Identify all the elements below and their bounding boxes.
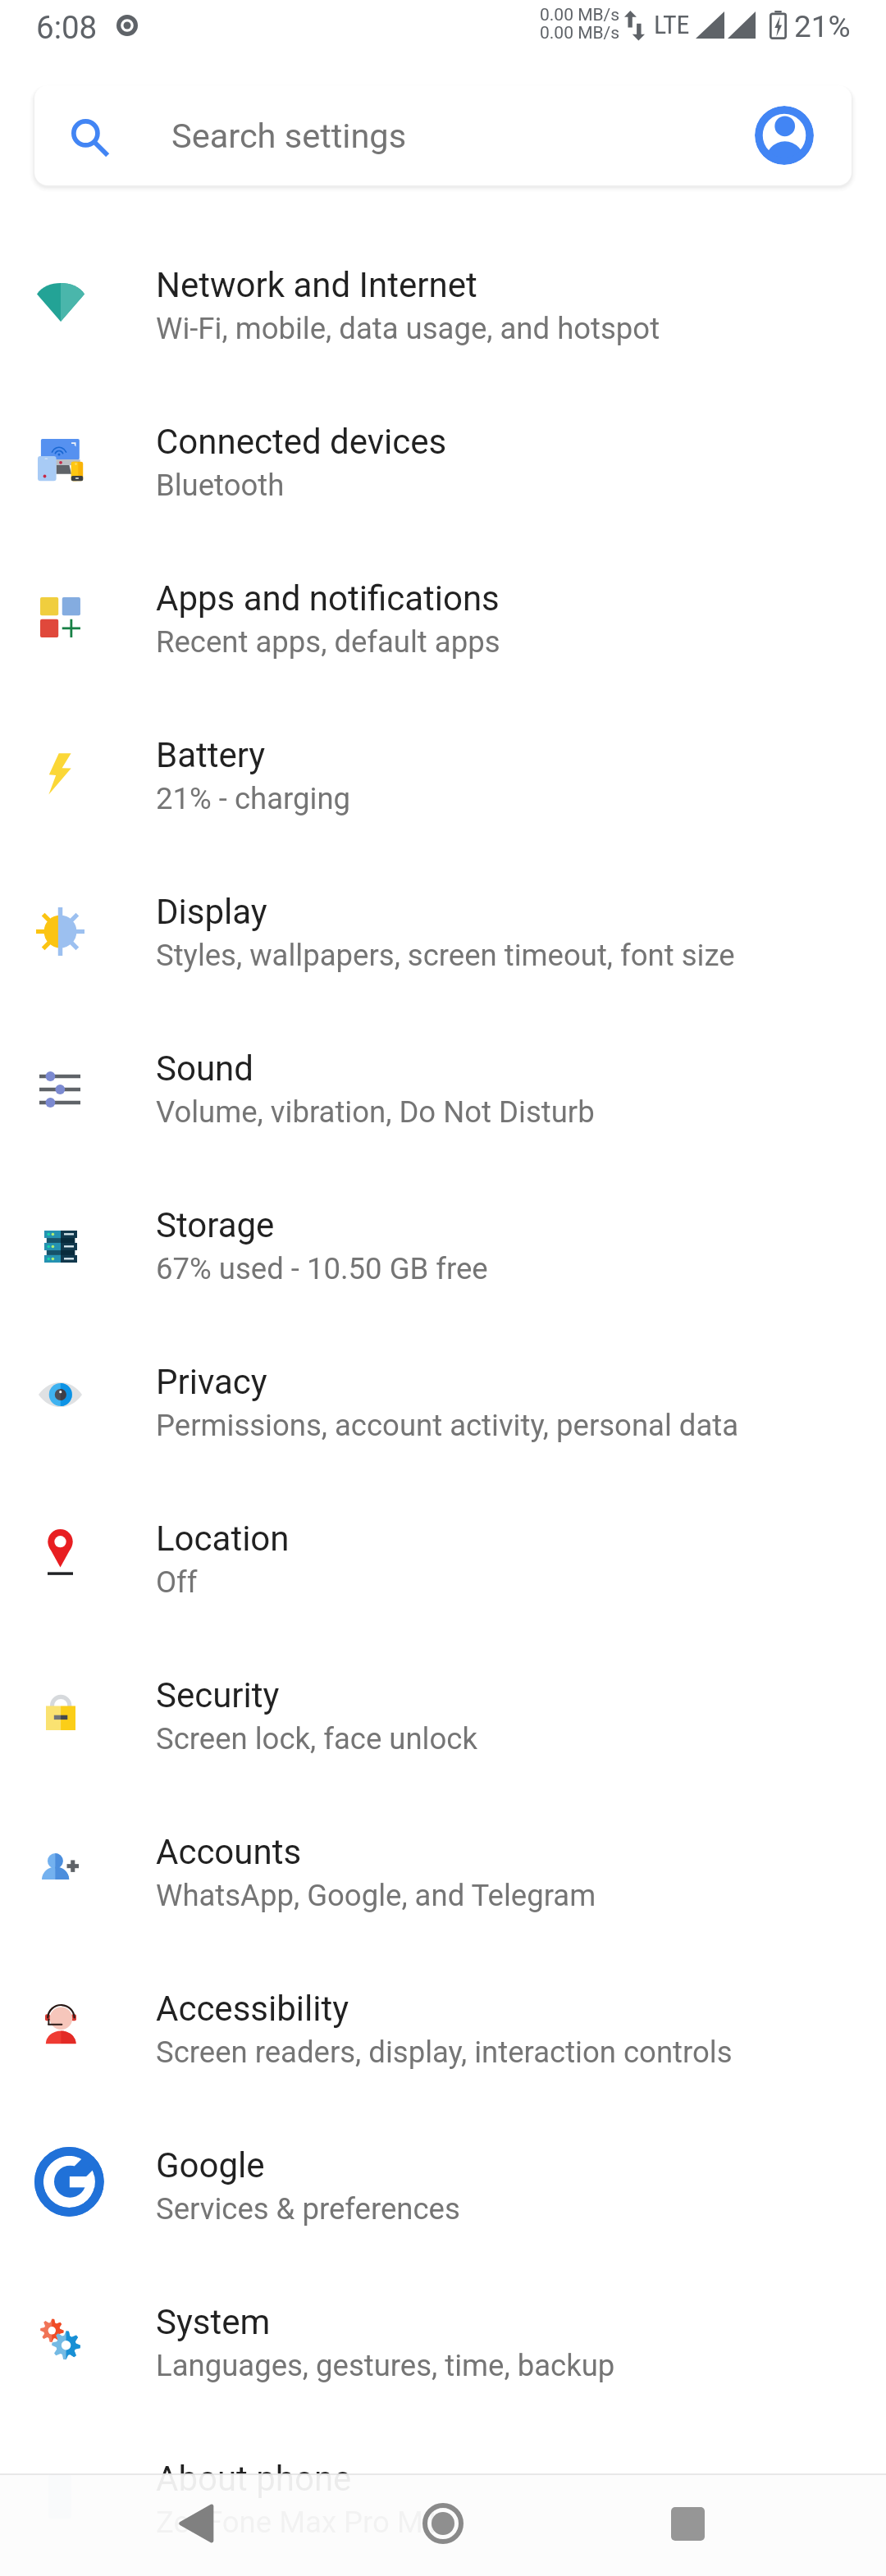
staticText: Recent apps, default apps bbox=[156, 624, 500, 660]
staticText: 0.00 MB/s bbox=[540, 5, 620, 25]
staticText: Accessibility bbox=[156, 1989, 349, 2029]
staticText: LTE bbox=[654, 9, 690, 40]
staticText: Location bbox=[156, 1519, 290, 1559]
button[interactable]: About phone bbox=[0, 2442, 886, 2576]
button[interactable]: Sound bbox=[0, 1032, 886, 1189]
staticText: Privacy bbox=[156, 1362, 267, 1402]
staticText: 6:08 bbox=[36, 9, 98, 46]
staticText: Accounts bbox=[156, 1832, 302, 1872]
staticText: Battery bbox=[156, 735, 266, 775]
button[interactable]: Storage bbox=[0, 1189, 886, 1345]
staticText: Security bbox=[156, 1675, 280, 1715]
staticText: Connected devices bbox=[156, 422, 447, 462]
button[interactable]: Apps and notifications bbox=[0, 562, 886, 719]
staticText: Services & preferences bbox=[156, 2191, 460, 2227]
staticText: 21% - charging bbox=[156, 781, 351, 816]
staticText: Google bbox=[156, 2145, 265, 2185]
staticText: 21% bbox=[794, 9, 851, 44]
staticText: Bluetooth bbox=[156, 468, 285, 503]
staticText: Apps and notifications bbox=[156, 578, 500, 619]
button[interactable]: Recents bbox=[658, 2494, 717, 2553]
staticText: Styles, wallpapers, screen timeout, font… bbox=[156, 938, 735, 973]
staticText: Wi-Fi, mobile, data usage, and hotspot bbox=[156, 311, 660, 346]
button[interactable]: Display bbox=[0, 875, 886, 1032]
button[interactable]: Back bbox=[166, 2494, 225, 2553]
staticText: ZenFone Max Pro M1 bbox=[156, 2505, 441, 2540]
staticText: Sound bbox=[156, 1048, 253, 1089]
staticText: Screen lock, face unlock bbox=[156, 1721, 477, 1756]
staticText: Screen readers, display, interaction con… bbox=[156, 2035, 733, 2070]
button[interactable]: Location bbox=[0, 1502, 886, 1659]
button[interactable]: Google bbox=[0, 2129, 886, 2286]
staticText: Display bbox=[156, 892, 267, 932]
staticText: Search settings bbox=[171, 116, 407, 156]
staticText: Languages, gestures, time, backup bbox=[156, 2348, 615, 2383]
button[interactable]: Security bbox=[0, 1659, 886, 1816]
staticText: Off bbox=[156, 1564, 198, 1600]
staticText: Network and Internet bbox=[156, 265, 477, 305]
button[interactable]: Accounts bbox=[0, 1816, 886, 1972]
button[interactable]: Home bbox=[413, 2494, 473, 2553]
button[interactable]: Connected devices bbox=[0, 405, 886, 562]
staticText: About phone bbox=[156, 2459, 352, 2499]
staticText: Storage bbox=[156, 1205, 275, 1245]
staticText: System bbox=[156, 2302, 271, 2342]
button[interactable]: Account bbox=[755, 106, 814, 165]
button[interactable]: System bbox=[0, 2286, 886, 2442]
staticText: Volume, vibration, Do Not Disturb bbox=[156, 1094, 595, 1130]
staticText: WhatsApp, Google, and Telegram bbox=[156, 1878, 596, 1913]
staticText: Permissions, account activity, personal … bbox=[156, 1408, 739, 1443]
button[interactable]: Accessibility bbox=[0, 1972, 886, 2129]
staticText: 67% used - 10.50 GB free bbox=[156, 1251, 488, 1286]
staticText: 0.00 MB/s bbox=[540, 23, 620, 43]
button[interactable]: Privacy bbox=[0, 1345, 886, 1502]
button[interactable]: Search settings bbox=[34, 85, 852, 185]
button[interactable]: Battery bbox=[0, 719, 886, 875]
button[interactable]: Network and Internet bbox=[0, 249, 886, 405]
